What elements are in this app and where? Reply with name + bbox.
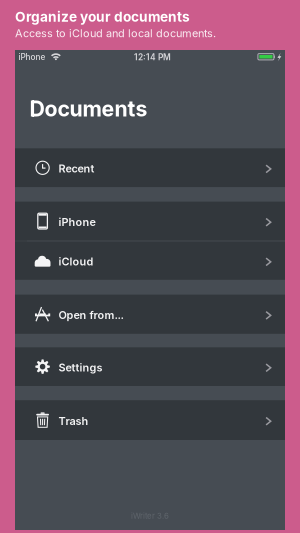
staticText: Settings: [58, 361, 102, 374]
staticText: Documents: [29, 96, 147, 121]
staticText: Organize your documents: [15, 8, 190, 25]
staticText: Trash: [58, 414, 88, 427]
button[interactable]: iCloud: [15, 242, 285, 280]
staticText: Access to iCloud and local documents.: [15, 26, 216, 40]
staticText: Recent: [58, 162, 94, 175]
staticText: Open from...: [58, 308, 123, 322]
staticText: iPhone: [19, 52, 46, 62]
button[interactable]: Recent: [15, 148, 285, 187]
button[interactable]: Settings: [15, 347, 285, 386]
staticText: iWriter 3.6: [131, 511, 169, 521]
staticText: 12:14 PM: [134, 52, 171, 62]
staticText: iPhone: [58, 215, 95, 228]
button[interactable]: Open from...: [15, 295, 285, 334]
button[interactable]: iPhone: [15, 202, 285, 241]
button[interactable]: Trash: [15, 400, 285, 440]
staticText: iCloud: [58, 255, 93, 268]
